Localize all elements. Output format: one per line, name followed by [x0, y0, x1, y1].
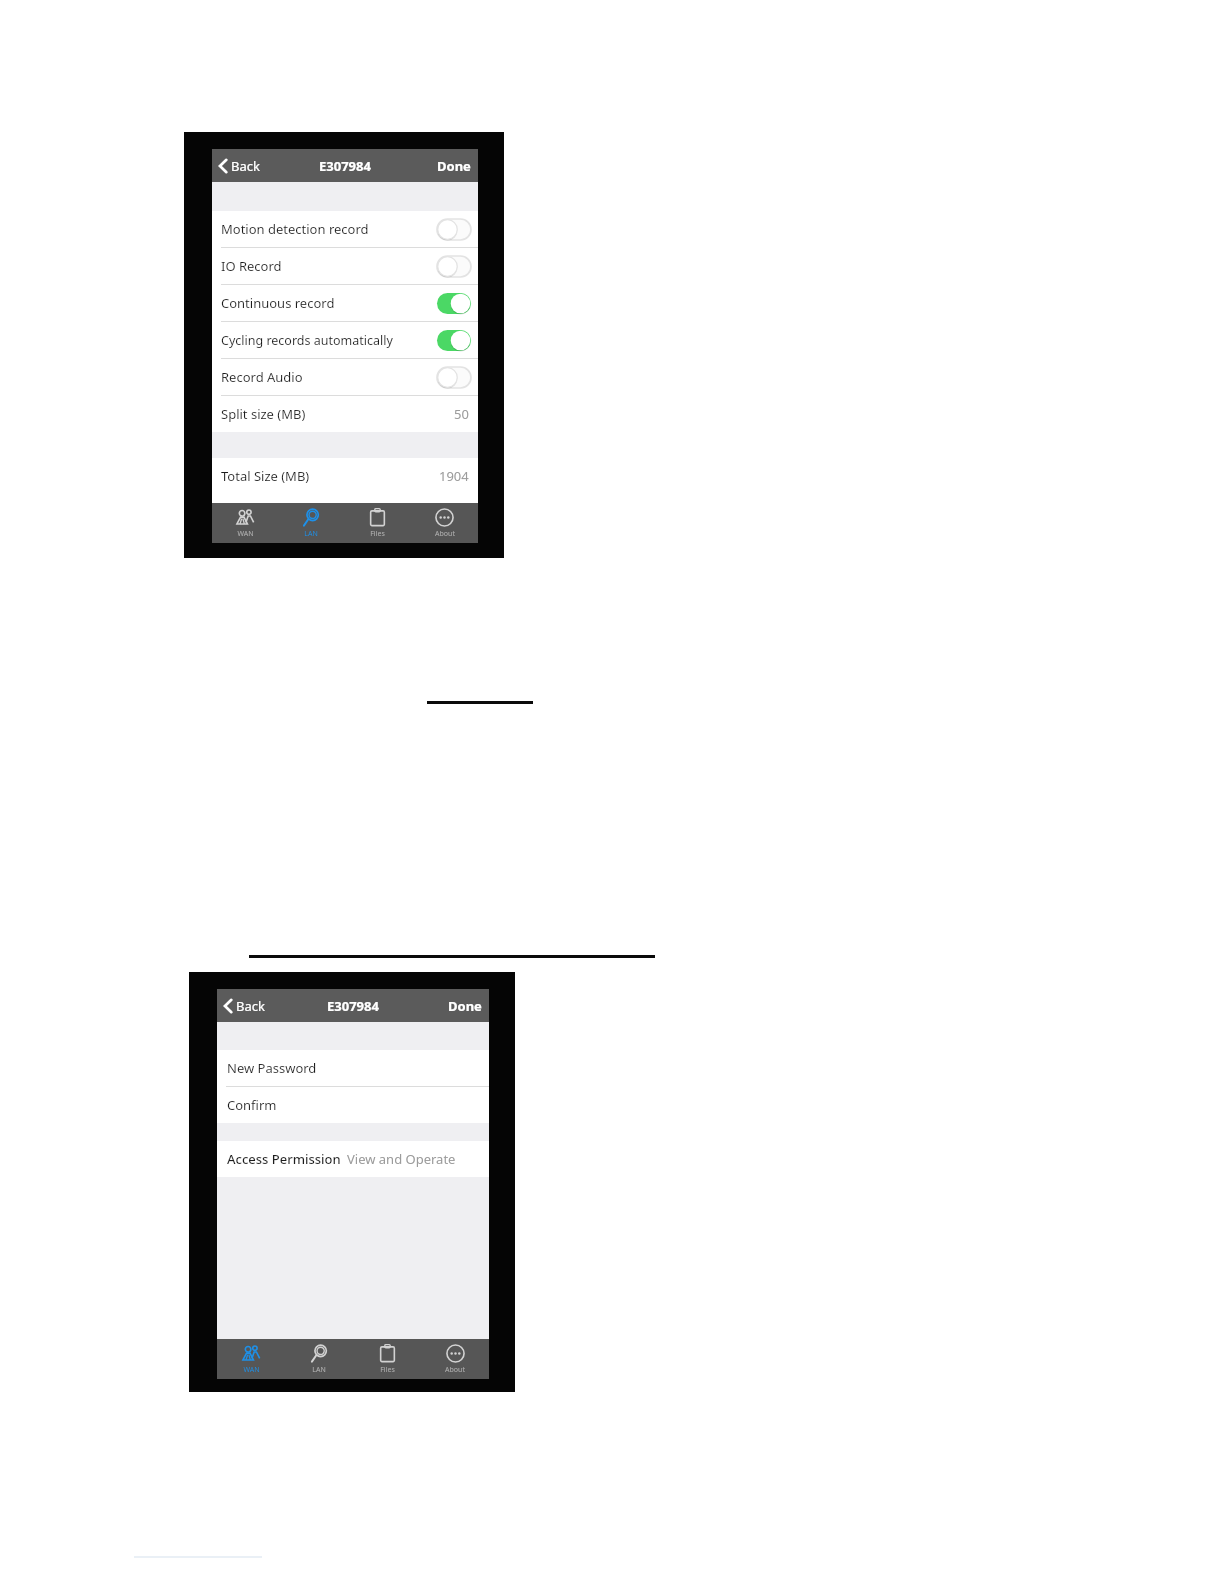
button[interactable]: Switch off: [437, 367, 471, 388]
button[interactable]: Access Permission: [217, 1141, 489, 1177]
staticText: Files: [370, 529, 385, 539]
button[interactable]: Total Size (MB): [212, 458, 478, 494]
staticText: E307984: [319, 157, 371, 175]
staticText: Access Permission: [227, 1150, 341, 1168]
staticText: Done: [437, 157, 471, 175]
staticText: About: [435, 529, 455, 539]
button[interactable]: WAN: [217, 1339, 285, 1379]
button[interactable]: IO Record: [212, 248, 478, 284]
staticText: Record Audio: [221, 368, 437, 386]
button[interactable]: Continuous record: [212, 285, 478, 321]
button[interactable]: LAN: [285, 1339, 353, 1379]
staticText: Split size (MB): [221, 405, 454, 423]
button[interactable]: Cycling records automatically: [212, 322, 478, 358]
staticText: Done: [448, 997, 482, 1015]
button[interactable]: Back: [217, 992, 271, 1020]
staticText: Total Size (MB): [221, 467, 439, 485]
button[interactable]: New Password: [217, 1050, 489, 1086]
staticText: 1904: [439, 467, 469, 485]
button[interactable]: Files: [344, 503, 411, 543]
staticText: View and Operate: [347, 1150, 456, 1168]
staticText: 50: [454, 405, 469, 423]
staticText: Motion detection record: [221, 220, 437, 238]
button[interactable]: Switch on: [437, 293, 471, 314]
staticText: WAN: [237, 529, 254, 539]
button[interactable]: WAN: [212, 503, 278, 543]
button[interactable]: Back: [212, 152, 266, 180]
staticText: New Password: [227, 1059, 317, 1077]
staticText: WAN: [243, 1365, 260, 1375]
staticText: LAN: [312, 1365, 326, 1375]
button[interactable]: Done: [430, 152, 478, 180]
staticText: Back: [236, 997, 265, 1015]
button[interactable]: Switch off: [437, 219, 471, 240]
button[interactable]: Switch on: [437, 330, 471, 351]
button[interactable]: Motion detection record: [212, 211, 478, 247]
button[interactable]: Files: [353, 1339, 421, 1379]
staticText: Files: [380, 1365, 395, 1375]
button[interactable]: About: [421, 1339, 489, 1379]
staticText: Cycling records automatically: [221, 332, 437, 349]
staticText: LAN: [304, 529, 318, 539]
button[interactable]: Done: [441, 992, 489, 1020]
button[interactable]: Confirm: [217, 1087, 489, 1123]
staticText: E307984: [327, 997, 379, 1015]
button[interactable]: Switch off: [437, 256, 471, 277]
staticText: Continuous record: [221, 294, 437, 312]
staticText: About: [445, 1365, 465, 1375]
staticText: Confirm: [227, 1096, 277, 1114]
button[interactable]: About: [411, 503, 478, 543]
staticText: IO Record: [221, 257, 437, 275]
button[interactable]: LAN: [278, 503, 344, 543]
button[interactable]: Record Audio: [212, 359, 478, 395]
button[interactable]: Split size (MB): [212, 396, 478, 432]
staticText: Back: [231, 157, 260, 175]
